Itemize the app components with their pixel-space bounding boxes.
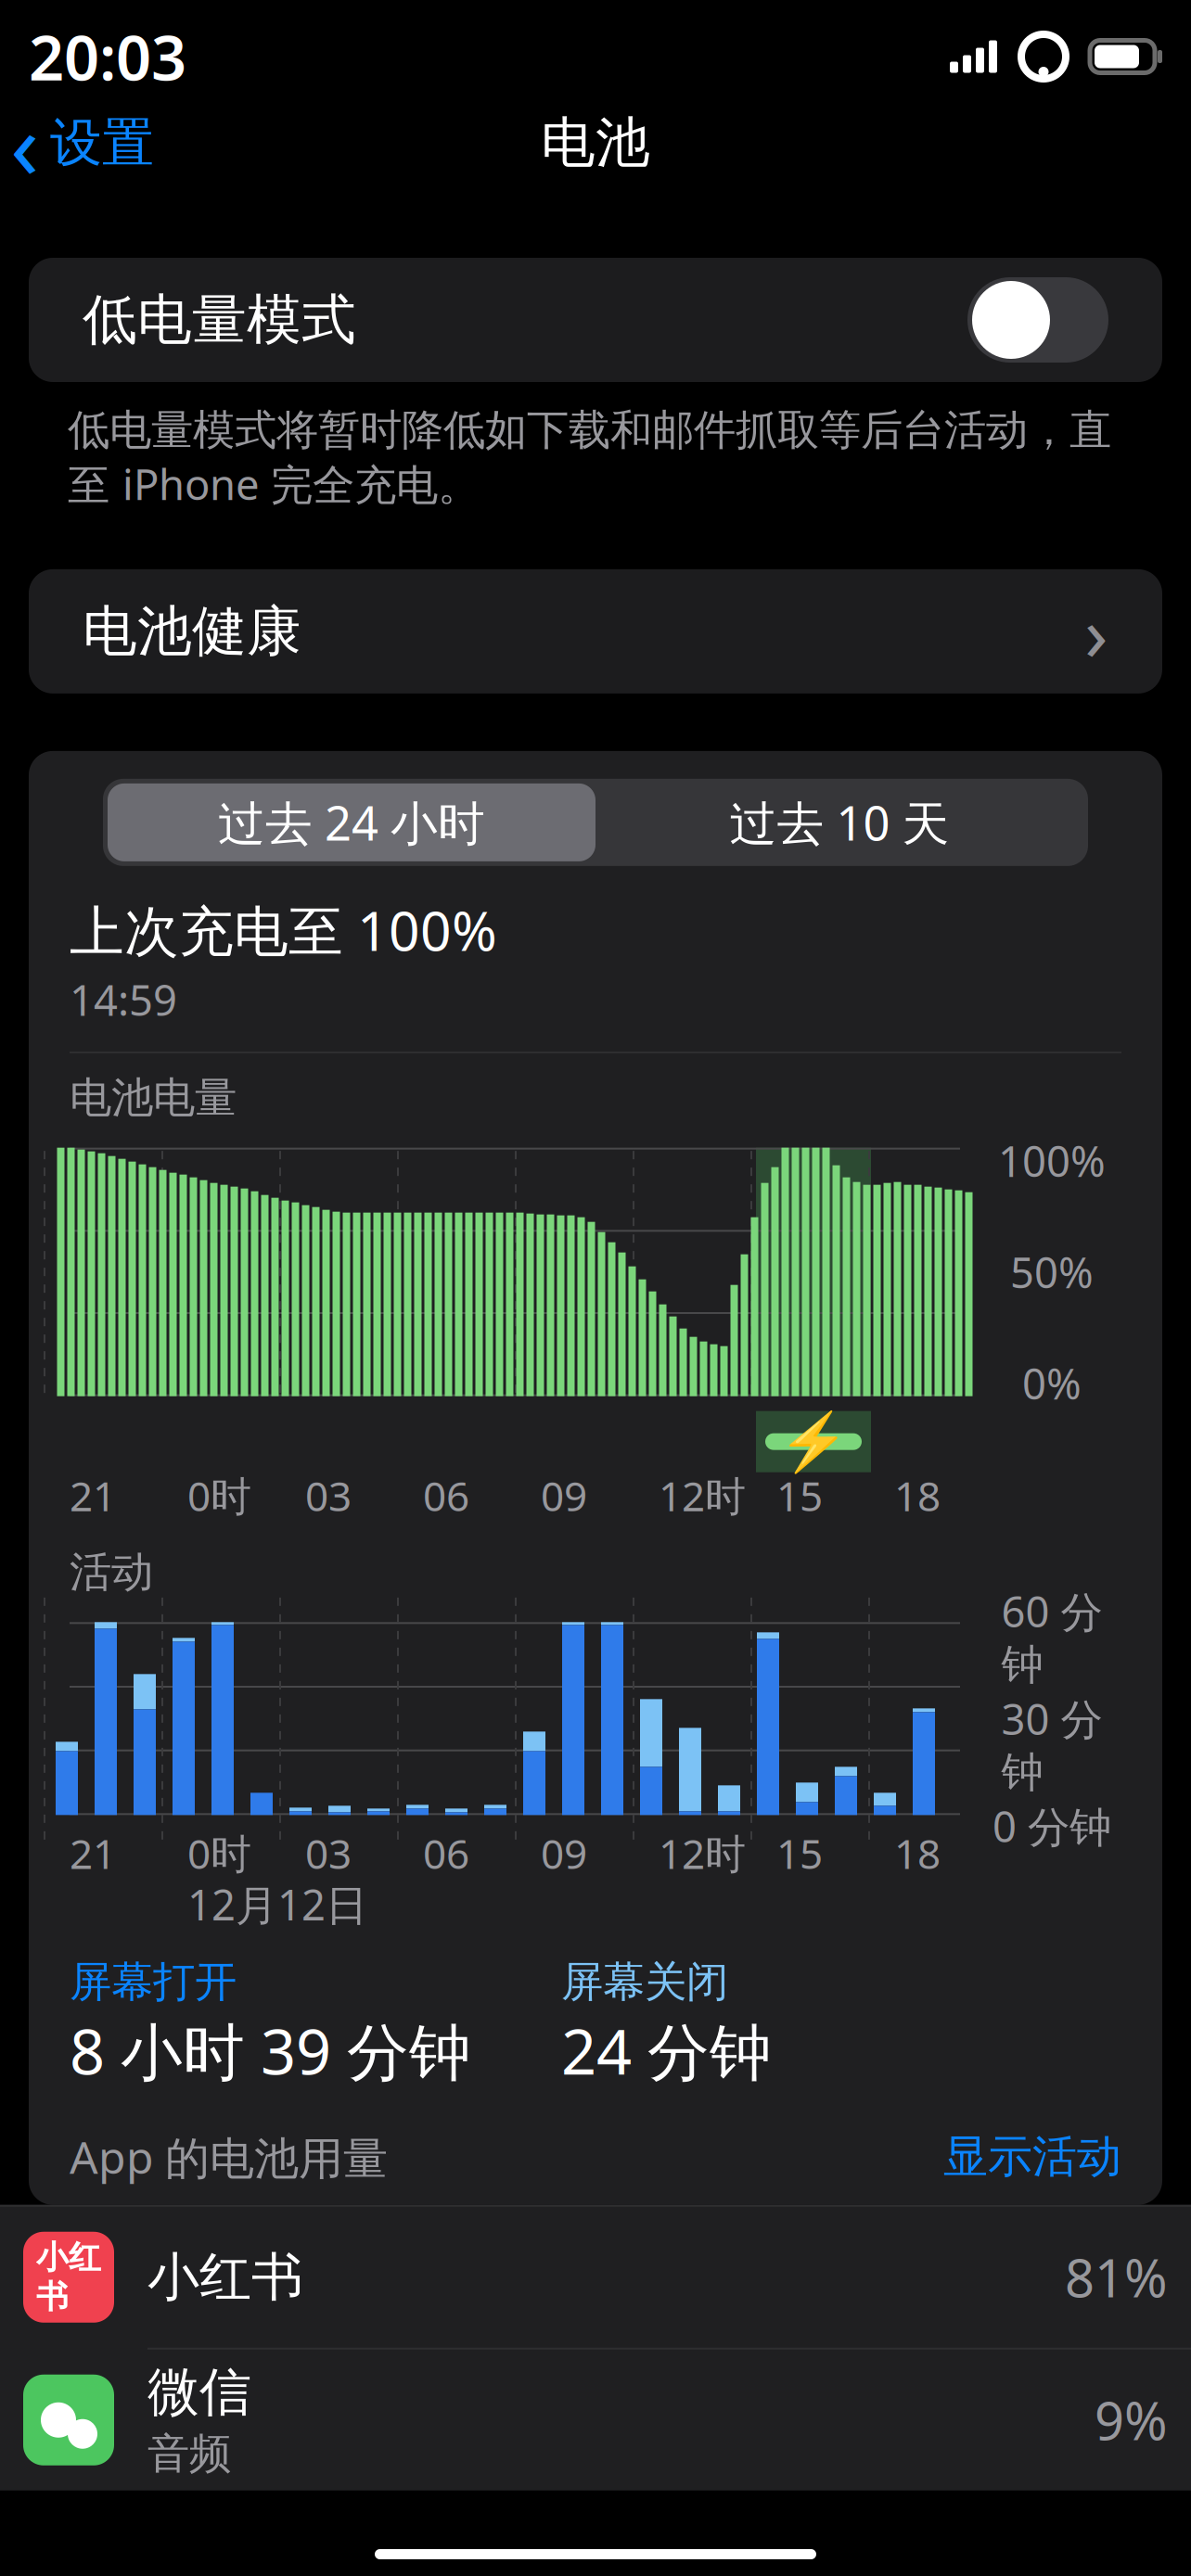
staticText: 24 分钟 (561, 2010, 772, 2092)
staticText: ‹ (10, 80, 39, 205)
staticText: 100% (998, 1133, 1106, 1189)
staticText: 03 (305, 1468, 352, 1523)
staticText: 显示活动 (943, 2129, 1121, 2184)
staticText: 0时 (187, 1826, 251, 1880)
staticText: 03 (305, 1826, 352, 1880)
button[interactable]: 低电量模式 (29, 258, 1162, 382)
button[interactable]: ‹ (3, 71, 161, 214)
staticText: 电池 (541, 109, 650, 176)
staticText: 12时 (659, 1826, 746, 1880)
staticText: 设置 (50, 111, 154, 175)
staticText: 18 (894, 1826, 941, 1880)
staticText: 过去 10 天 (730, 791, 949, 854)
staticText: 0时 (187, 1468, 251, 1523)
staticText: › (1084, 580, 1108, 682)
staticText: 活动 (70, 1546, 153, 1598)
staticText: ⚡ (778, 1409, 849, 1474)
staticText: 15 (776, 1826, 823, 1880)
staticText: 屏幕关闭 (561, 1956, 728, 2008)
staticText: 小红书 (36, 2238, 101, 2317)
staticText: 21 (70, 1826, 116, 1880)
staticText: 电池健康 (83, 598, 301, 665)
staticText: 小红书 (147, 2245, 303, 2309)
staticText: 50% (1010, 1244, 1094, 1300)
button[interactable]: 过去 24 小时 (108, 783, 595, 861)
staticText: 20:03 (29, 15, 186, 98)
staticText: 电池电量 (70, 1072, 237, 1124)
staticText: 09 (541, 1826, 587, 1880)
button[interactable]: 过去 10 天 (595, 783, 1083, 861)
staticText: 8 小时 39 分钟 (70, 2010, 471, 2092)
staticText: 过去 24 小时 (218, 791, 485, 854)
button[interactable]: 微信 (0, 2350, 1191, 2491)
staticText: 音频 (147, 2428, 231, 2480)
button[interactable]: 电池健康 (29, 569, 1162, 694)
staticText: 60 分钟 (1001, 1583, 1102, 1691)
staticText: 21 (70, 1468, 116, 1523)
staticText: 12月12日 (187, 1876, 367, 1932)
staticText: 12时 (659, 1468, 746, 1523)
staticText: App 的电池用量 (70, 2127, 388, 2186)
staticText: 06 (423, 1468, 469, 1523)
button[interactable]: 显示活动 (943, 2129, 1121, 2184)
staticText: 0% (1022, 1355, 1082, 1411)
staticText: 上次充电至 100% (70, 894, 497, 966)
staticText: 0 分钟 (992, 1798, 1111, 1854)
staticText: 14:59 (70, 972, 177, 1027)
staticText: 06 (423, 1826, 469, 1880)
staticText: 屏幕打开 (70, 1956, 237, 2008)
staticText: 81% (1065, 2243, 1168, 2312)
staticText: 低电量模式将暂时降低如下载和邮件抓取等后台活动，直至 iPhone 完全充电。 (68, 404, 1111, 512)
staticText: 9% (1095, 2386, 1168, 2455)
button[interactable]: 小红书 (0, 2207, 1191, 2348)
staticText: 18 (894, 1468, 941, 1523)
staticText: 09 (541, 1468, 587, 1523)
staticText: 15 (776, 1468, 823, 1523)
staticText: 微信 (147, 2360, 251, 2424)
staticText: 低电量模式 (83, 287, 356, 353)
staticText: 30 分钟 (1001, 1691, 1102, 1798)
